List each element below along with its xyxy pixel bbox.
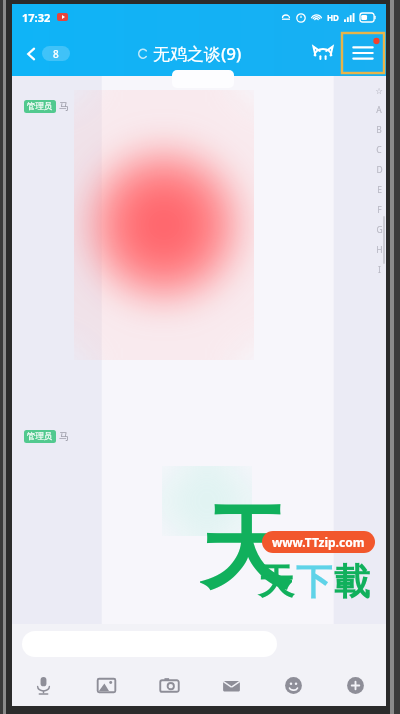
staticText: 下: [296, 559, 332, 604]
button[interactable]: Gallery: [75, 664, 138, 706]
button[interactable]: Group pet: [306, 36, 340, 70]
staticText: 載: [334, 559, 370, 604]
staticText: 天: [200, 491, 292, 606]
staticText: H: [376, 244, 383, 256]
staticText: www.TTzip.com: [272, 534, 365, 550]
staticText: C: [376, 144, 382, 156]
staticText: 无鸡之谈(9): [153, 42, 242, 65]
staticText: 17:32: [22, 10, 51, 25]
button[interactable]: Voice: [12, 664, 75, 706]
staticText: ☆: [375, 86, 383, 96]
staticText: A: [376, 104, 382, 116]
button[interactable]: More: [324, 664, 386, 706]
staticText: 天: [258, 559, 294, 604]
staticText: B: [376, 124, 382, 136]
staticText: 马: [59, 100, 69, 113]
staticText: 管理员: [27, 101, 53, 112]
staticText: HD: [327, 12, 339, 23]
button[interactable]: Camera: [138, 664, 200, 706]
staticText: 管理员: [27, 431, 53, 442]
staticText: D: [376, 164, 383, 176]
staticText: F: [377, 204, 382, 216]
button[interactable]: Files: [200, 664, 262, 706]
staticText: 8: [53, 47, 59, 61]
button[interactable]: Menu: [342, 33, 384, 73]
staticText: G: [376, 224, 383, 236]
button[interactable]: 8: [20, 40, 74, 67]
staticText: E: [377, 184, 382, 196]
staticText: 马: [59, 430, 69, 443]
staticText: I: [378, 264, 381, 276]
button[interactable]: Emoji: [262, 664, 324, 706]
